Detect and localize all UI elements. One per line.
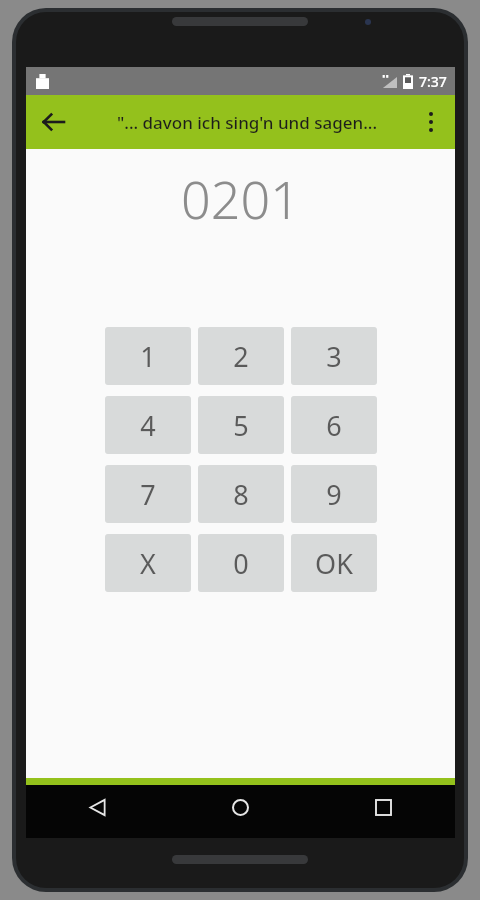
- button[interactable]: 9: [291, 465, 377, 523]
- staticText: X: [140, 545, 156, 582]
- button[interactable]: Back: [26, 785, 169, 838]
- staticText: 4: [140, 407, 156, 444]
- staticText: NUMMERN: [104, 813, 163, 828]
- button[interactable]: 5: [198, 396, 284, 454]
- button[interactable]: 2: [198, 327, 284, 385]
- button[interactable]: 4: [105, 396, 191, 454]
- staticText: 7: [140, 476, 156, 513]
- button[interactable]: More options: [407, 98, 455, 146]
- button[interactable]: Home: [169, 785, 312, 838]
- staticText: 1: [140, 338, 156, 375]
- staticText: 9: [326, 476, 342, 513]
- button[interactable]: 7: [105, 465, 191, 523]
- staticText: 5: [233, 407, 249, 444]
- staticText: 7:37: [419, 72, 447, 91]
- button[interactable]: NUMMERN: [26, 778, 240, 838]
- staticText: OK: [315, 545, 353, 582]
- button[interactable]: X: [105, 534, 191, 592]
- button[interactable]: Recents: [312, 785, 455, 838]
- staticText: 8: [233, 476, 249, 513]
- staticText: 0201: [181, 163, 300, 234]
- staticText: "... davon ich sing'n und sagen...: [117, 111, 378, 134]
- staticText: 0: [233, 545, 249, 582]
- button[interactable]: 1: [105, 327, 191, 385]
- staticText: 2: [233, 338, 249, 375]
- staticText: 3: [326, 338, 342, 375]
- staticText: 6: [326, 407, 342, 444]
- button[interactable]: OK: [291, 534, 377, 592]
- button[interactable]: Back: [26, 95, 80, 149]
- button[interactable]: 3: [291, 327, 377, 385]
- button[interactable]: 6: [291, 396, 377, 454]
- button[interactable]: LISTE: [240, 778, 455, 838]
- button[interactable]: 0: [198, 534, 284, 592]
- button[interactable]: 8: [198, 465, 284, 523]
